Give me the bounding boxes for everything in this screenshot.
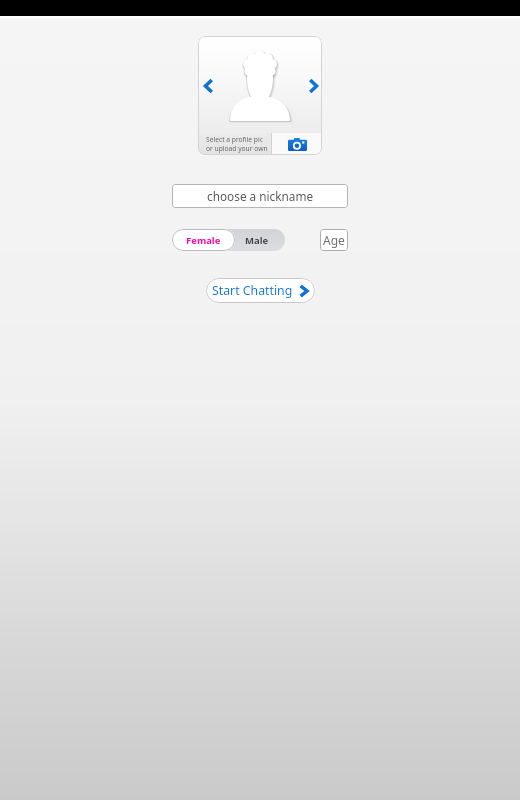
button[interactable]: Age (320, 229, 348, 251)
button[interactable]: Previous photo (198, 75, 218, 97)
button[interactable]: Take photo (272, 133, 322, 155)
button[interactable]: Select a profile pic (198, 133, 271, 155)
button[interactable]: Female (172, 229, 235, 251)
staticText: Age (323, 232, 345, 248)
staticText: Male (245, 234, 269, 247)
button[interactable]: choose a nickname (172, 184, 348, 208)
button[interactable]: Male (228, 229, 285, 251)
staticText: choose a nickname (207, 188, 314, 204)
button[interactable]: Next photo (303, 75, 322, 97)
staticText: Select a profile pic (206, 135, 263, 144)
staticText: Female (186, 234, 221, 247)
button[interactable]: Start Chatting (206, 278, 315, 303)
staticText: Start Chatting (212, 282, 293, 299)
staticText: or upload your own (206, 144, 268, 153)
